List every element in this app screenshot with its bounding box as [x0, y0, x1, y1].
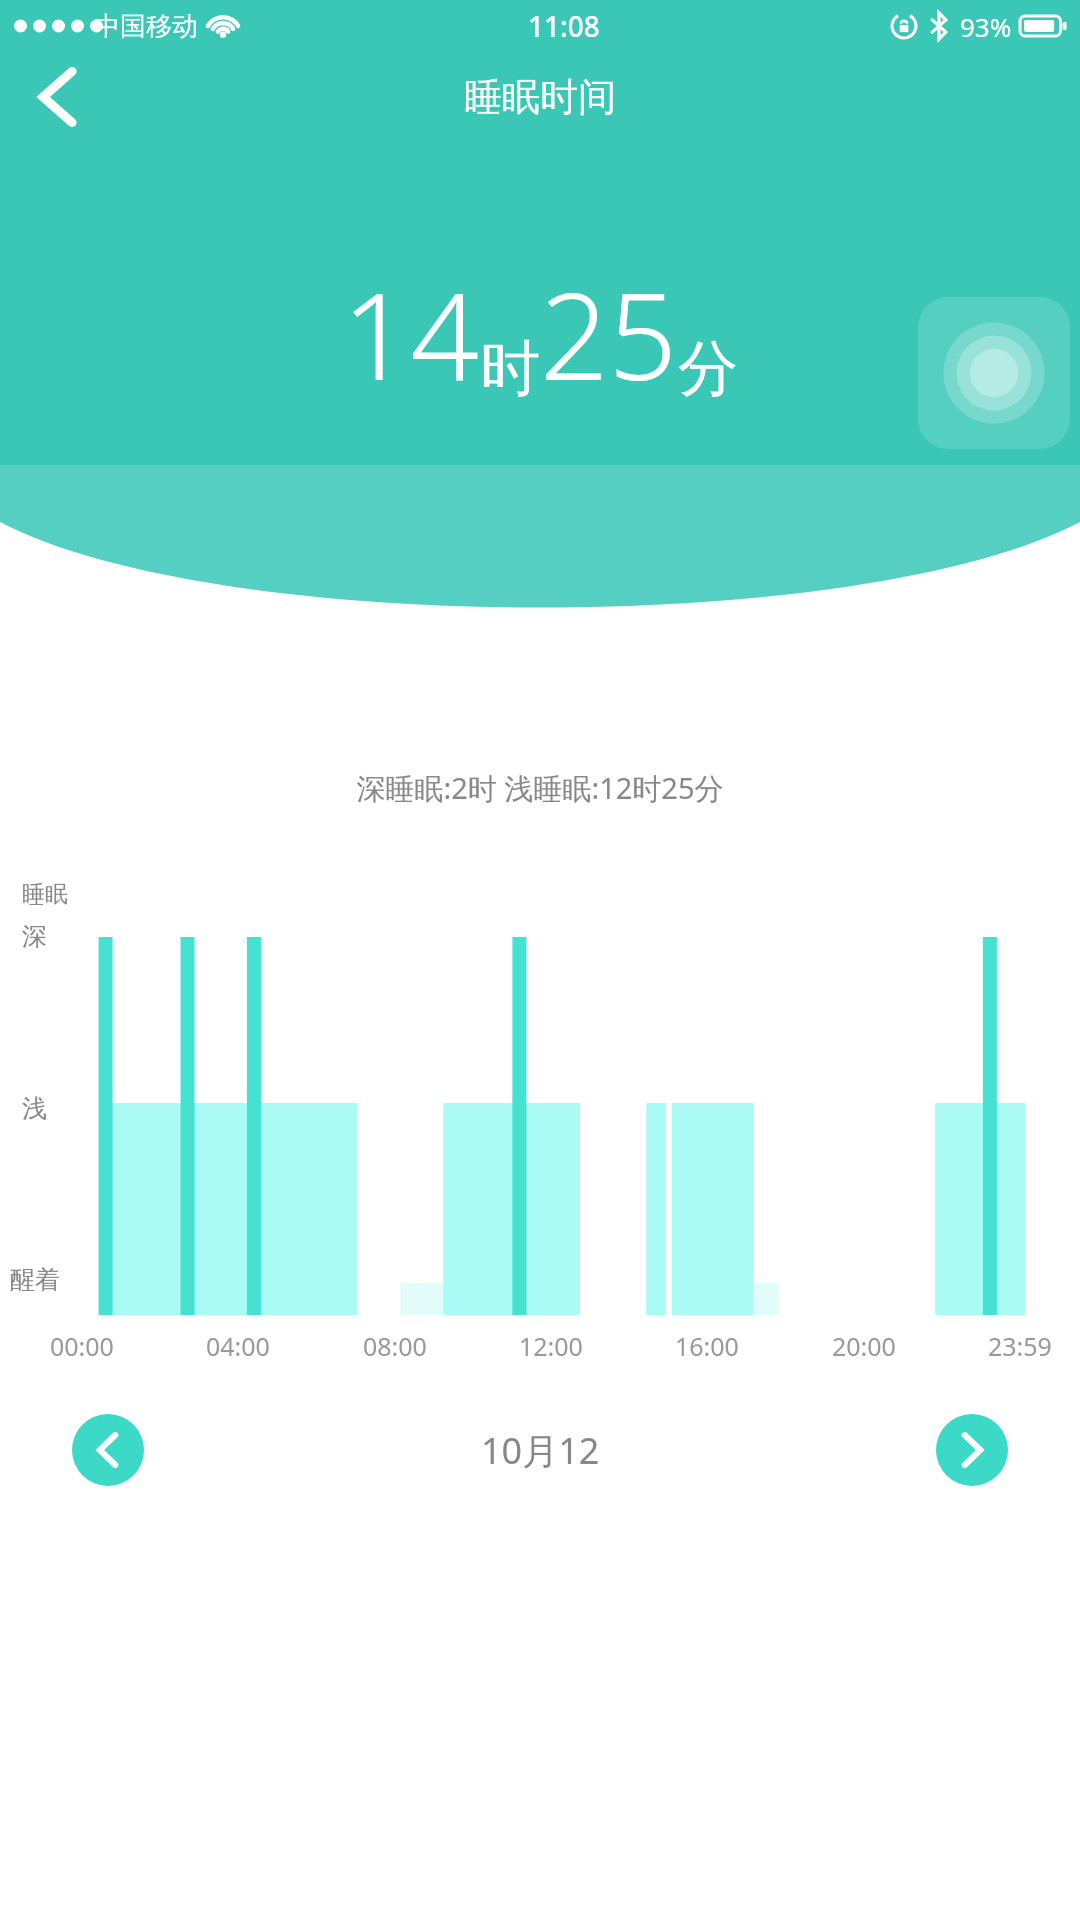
staticText: 深	[22, 921, 47, 952]
staticText: 00:00	[50, 1329, 114, 1363]
staticText: 睡眠时间	[464, 73, 616, 121]
staticText: 中国移动	[94, 10, 198, 43]
staticText: 分	[678, 331, 738, 407]
staticText: 11:08	[528, 7, 600, 45]
staticText: 深睡眠:2时 浅睡眠:12时25分	[0, 768, 1080, 808]
button[interactable]: Sleep detail	[918, 297, 1070, 449]
staticText: 睡眠	[22, 880, 68, 909]
staticText: 08:00	[363, 1329, 427, 1363]
staticText: 93%	[960, 9, 1012, 44]
staticText: 醒着	[10, 1264, 60, 1295]
staticText: 23:59	[988, 1329, 1052, 1363]
button[interactable]: Back	[18, 57, 98, 137]
staticText: 10月12	[481, 1426, 600, 1475]
staticText: 浅	[22, 1093, 47, 1124]
staticText: 25	[540, 252, 678, 415]
staticText: 14	[342, 252, 480, 415]
staticText: 16:00	[675, 1329, 739, 1363]
staticText: 20:00	[832, 1329, 896, 1363]
button[interactable]: Previous day	[72, 1414, 144, 1486]
staticText: 12:00	[519, 1329, 583, 1363]
button[interactable]: Next day	[936, 1414, 1008, 1486]
staticText: 04:00	[206, 1329, 270, 1363]
staticText: 时	[480, 331, 540, 407]
